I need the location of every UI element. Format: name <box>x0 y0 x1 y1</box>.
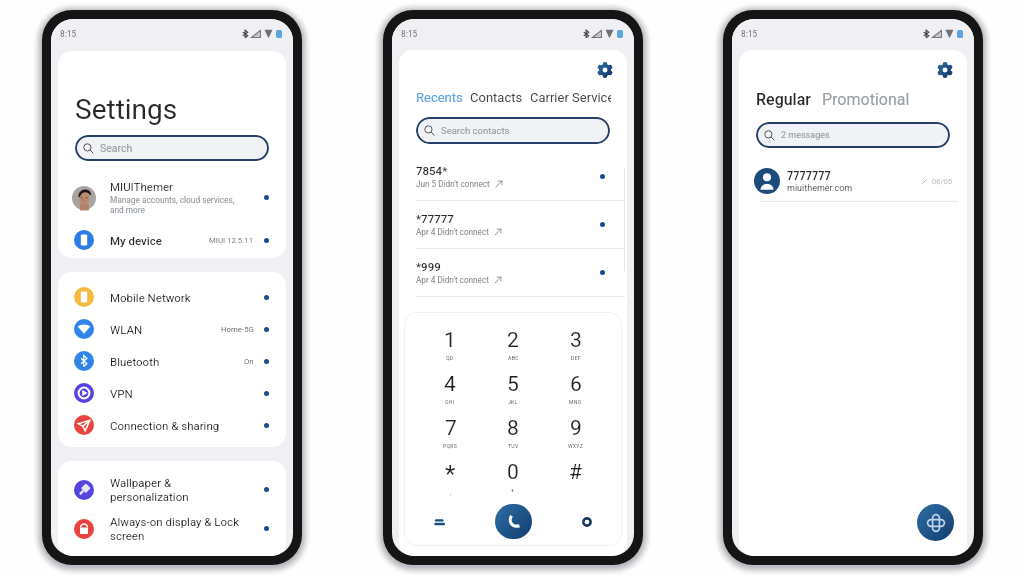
button[interactable]: Mobile Network <box>58 281 286 313</box>
staticText: Jun 5 Didn't connect <box>416 179 490 189</box>
staticText: # <box>569 460 582 485</box>
button[interactable]: * <box>419 460 481 504</box>
staticText: 3 <box>570 328 582 353</box>
button[interactable]: 7854* <box>399 153 627 200</box>
staticText: 06/05 <box>932 177 952 186</box>
button[interactable]: Recents <box>416 90 463 105</box>
staticText: 8 <box>507 416 519 441</box>
staticText: *999 <box>416 260 441 273</box>
staticText: 4 <box>444 372 456 397</box>
button[interactable]: 3 <box>544 328 607 372</box>
staticText: 6 <box>570 372 582 397</box>
staticText: *77777 <box>416 212 454 225</box>
button[interactable]: MIUIThemer <box>58 173 286 222</box>
staticText: My device <box>110 234 209 247</box>
button[interactable]: 7 <box>419 416 481 460</box>
staticText: Wallpaper & personalization <box>110 476 264 504</box>
button[interactable]: More options <box>567 504 607 539</box>
staticText: Settings <box>75 93 178 126</box>
staticText: Home-5G <box>221 325 254 334</box>
staticText: 0 <box>507 460 519 485</box>
button[interactable]: 2 messages <box>756 122 950 148</box>
staticText: Mobile Network <box>110 291 264 304</box>
staticText: Always-on display & Lock screen <box>110 515 264 543</box>
staticText: 2 <box>507 328 519 353</box>
staticText: MIUI 12.5.11 <box>209 236 254 245</box>
button[interactable]: 6 <box>544 372 607 416</box>
staticText: 9 <box>570 416 582 441</box>
button[interactable]: 7777777 <box>739 161 967 201</box>
button[interactable]: Bluetooth <box>58 345 286 377</box>
button[interactable]: Search contacts <box>416 117 610 144</box>
button[interactable]: VPN <box>58 377 286 409</box>
staticText: Apr 4 Didn't connect <box>416 275 489 285</box>
staticText: 8:15 <box>401 28 418 39</box>
button[interactable]: Contacts <box>470 90 523 105</box>
button[interactable]: 2 <box>481 328 544 372</box>
button[interactable]: Hide keypad <box>419 504 459 539</box>
staticText: 7777777 <box>787 168 831 183</box>
button[interactable]: Call <box>495 504 532 539</box>
staticText: Search contacts <box>441 125 510 136</box>
button[interactable]: Settings <box>935 60 955 80</box>
button[interactable]: 4 <box>419 372 481 416</box>
staticText: ABC <box>508 355 519 361</box>
staticText: miuithemer.com <box>787 183 853 194</box>
button[interactable]: 1 <box>419 328 481 372</box>
staticText: * <box>445 460 456 488</box>
button[interactable]: Connection & sharing <box>58 409 286 441</box>
staticText: 8:15 <box>741 28 758 39</box>
staticText: QD <box>446 355 454 361</box>
staticText: + <box>511 487 515 493</box>
staticText: DEF <box>571 355 581 361</box>
button[interactable]: *77777 <box>399 201 627 248</box>
staticText: WXYZ <box>568 443 584 449</box>
staticText: JKL <box>508 399 518 405</box>
staticText: 2 messages <box>781 130 830 141</box>
button[interactable]: Regular <box>756 90 811 109</box>
staticText: Apr 4 Didn't connect <box>416 227 489 237</box>
staticText: 8:15 <box>60 28 77 39</box>
button[interactable]: 0 <box>481 460 544 504</box>
button[interactable]: Settings <box>595 60 615 80</box>
button[interactable]: *999 <box>399 249 627 296</box>
button[interactable]: Carrier Service <box>530 90 611 105</box>
button[interactable]: Promotional <box>822 90 910 109</box>
staticText: 7854* <box>416 164 448 177</box>
staticText: VPN <box>110 387 264 400</box>
button[interactable]: New message <box>917 504 954 541</box>
button[interactable]: Wallpaper & personalization <box>58 470 286 509</box>
staticText: WLAN <box>110 323 221 336</box>
staticText: TUV <box>508 443 519 449</box>
staticText: 5 <box>507 372 519 397</box>
staticText: 7 <box>445 416 457 441</box>
staticText: MIUIThemer <box>110 180 173 193</box>
staticText: Search <box>100 142 133 154</box>
button[interactable]: 8 <box>481 416 544 460</box>
button[interactable]: Always-on display & Lock screen <box>58 509 286 548</box>
button[interactable]: 9 <box>544 416 607 460</box>
staticText: PQRS <box>443 443 458 449</box>
button[interactable]: My device <box>58 222 286 258</box>
staticText: MNO <box>569 399 582 405</box>
staticText: 1 <box>444 328 456 353</box>
staticText: On <box>244 357 254 366</box>
staticText: , <box>450 490 452 496</box>
staticText: Bluetooth <box>110 355 244 368</box>
staticText: Manage accounts, cloud services, and mor… <box>110 195 235 215</box>
button[interactable]: WLAN <box>58 313 286 345</box>
button[interactable]: 5 <box>481 372 544 416</box>
button[interactable]: # <box>544 460 607 504</box>
staticText: Connection & sharing <box>110 419 264 432</box>
button[interactable]: Search <box>75 135 269 161</box>
staticText: GHI <box>445 399 455 405</box>
